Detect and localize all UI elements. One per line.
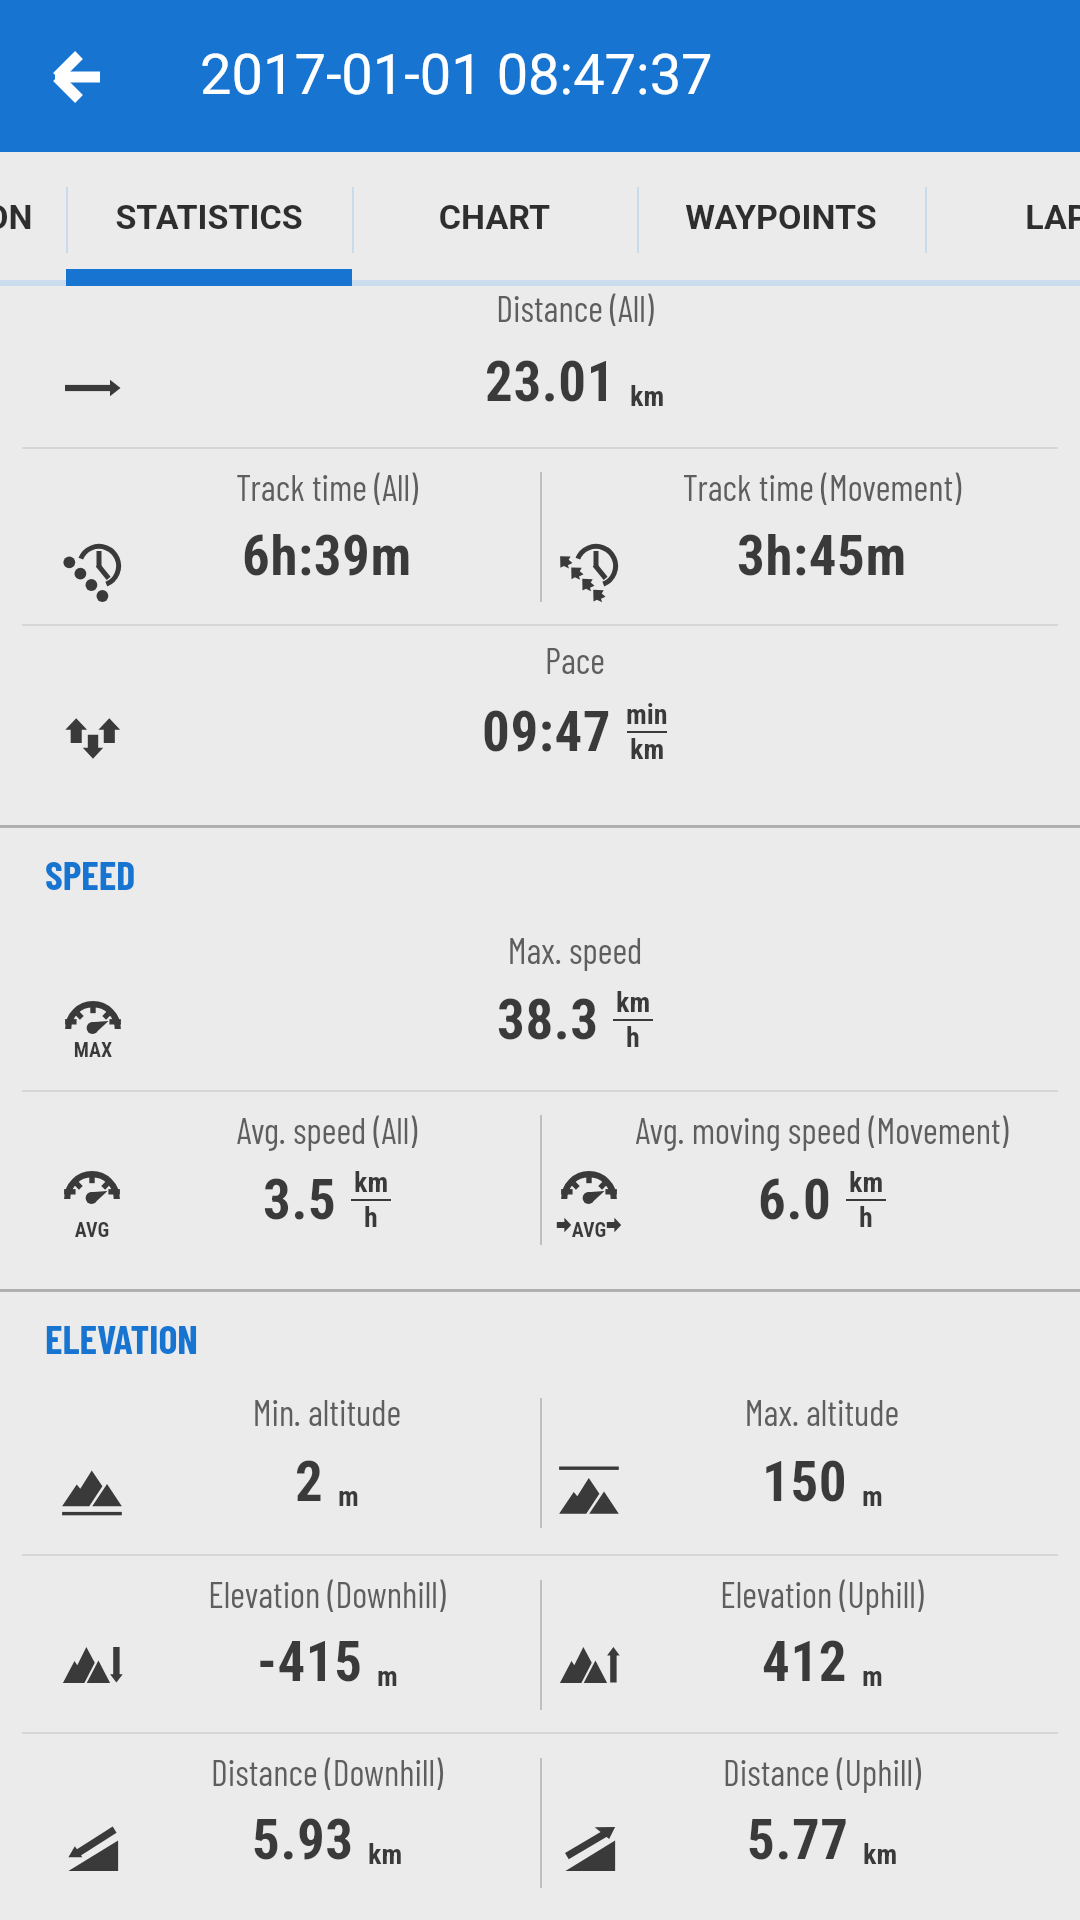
button[interactable]: STATISTICS — [66, 152, 352, 286]
button[interactable]: Minimum altitude — [0, 1389, 540, 1554]
button[interactable]: Track time — [0, 447, 540, 624]
staticText: LAPS — [925, 197, 1080, 237]
staticText: h — [859, 1201, 873, 1234]
staticText: h — [364, 1201, 378, 1234]
staticText: MAX — [0, 1038, 193, 1061]
staticText: m — [377, 1660, 398, 1693]
staticText: Max. speed — [175, 928, 975, 971]
button[interactable]: Downhill distance — [0, 1732, 540, 1909]
staticText: 150 — [762, 1450, 848, 1514]
staticText: SPEED — [45, 850, 136, 898]
staticText: km — [630, 733, 665, 766]
staticText: 412 — [762, 1630, 848, 1694]
staticText: km — [630, 380, 665, 413]
button[interactable]: Pace — [0, 624, 1080, 824]
staticText: Elevation (Uphill) — [422, 1572, 1080, 1615]
button[interactable]: Max speed — [0, 928, 1080, 1090]
button[interactable]: Downhill elevation — [0, 1554, 540, 1731]
button[interactable]: WAYPOINTS — [637, 152, 925, 286]
staticText: -415 — [257, 1630, 363, 1694]
staticText: Track time (Movement) — [422, 465, 1080, 508]
button[interactable]: CHART — [352, 152, 637, 286]
staticText: 09:47 — [482, 700, 612, 764]
staticText: m — [862, 1480, 883, 1513]
staticText: km — [863, 1838, 898, 1871]
staticText: 6h:39m — [242, 524, 412, 588]
button[interactable]: Navigate up — [30, 30, 125, 125]
staticText: km — [616, 986, 651, 1019]
staticText: Distance (Downhill) — [0, 1750, 727, 1793]
staticText: 2017-01-01 08:47:37 — [200, 42, 713, 108]
staticText: AVG — [0, 1218, 192, 1241]
staticText: h — [626, 1021, 640, 1054]
staticText: Avg. speed (All) — [0, 1108, 727, 1151]
staticText: ELEVATION — [45, 1314, 198, 1362]
button[interactable]: ION — [0, 152, 66, 286]
staticText: Distance (All) — [175, 286, 975, 329]
staticText: km — [354, 1166, 389, 1199]
staticText: 5.77 — [747, 1808, 849, 1872]
staticText: ION — [0, 197, 33, 237]
button[interactable]: Distance — [0, 286, 1080, 447]
staticText: Track time (All) — [0, 465, 727, 508]
staticText: m — [862, 1660, 883, 1693]
staticText: Min. altitude — [0, 1390, 727, 1433]
staticText: 23.01 — [485, 350, 616, 414]
staticText: Avg. moving speed (Movement) — [422, 1108, 1080, 1151]
staticText: Pace — [175, 638, 975, 681]
button[interactable]: Maximum altitude — [540, 1389, 1080, 1554]
staticText: 3h:45m — [737, 524, 907, 588]
button[interactable]: Average moving speed — [540, 1090, 1080, 1267]
staticText: Max. altitude — [422, 1390, 1080, 1433]
button[interactable]: LAPS — [925, 152, 1080, 286]
staticText: 6.0 — [758, 1168, 832, 1232]
staticText: Elevation (Downhill) — [0, 1572, 727, 1615]
staticText: m — [338, 1480, 359, 1513]
staticText: 2 — [295, 1450, 324, 1514]
staticText: AVG — [489, 1218, 689, 1241]
button[interactable]: Uphill elevation — [540, 1554, 1080, 1731]
button[interactable]: Average speed — [0, 1090, 540, 1267]
staticText: km — [368, 1838, 403, 1871]
staticText: km — [849, 1166, 884, 1199]
staticText: 38.3 — [497, 988, 599, 1052]
staticText: STATISTICS — [66, 197, 352, 237]
staticText: CHART — [352, 197, 637, 237]
staticText: 3.5 — [263, 1168, 337, 1232]
staticText: min — [626, 698, 668, 731]
button[interactable]: Uphill distance — [540, 1732, 1080, 1909]
staticText: 5.93 — [252, 1808, 354, 1872]
staticText: WAYPOINTS — [637, 197, 925, 237]
button[interactable]: Moving time — [540, 447, 1080, 624]
staticText: Distance (Uphill) — [422, 1750, 1080, 1793]
